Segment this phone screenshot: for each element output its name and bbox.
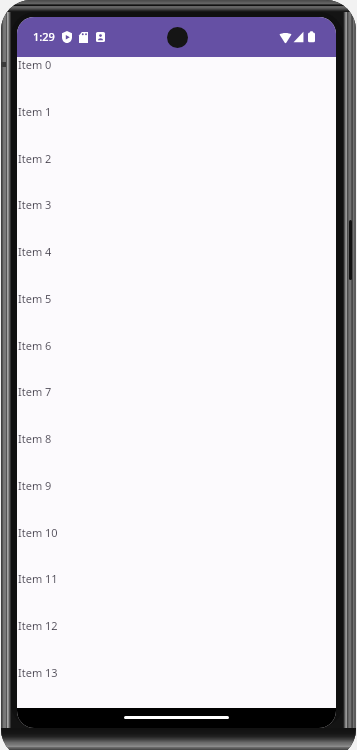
button[interactable]: Item 0 bbox=[17, 57, 336, 104]
button[interactable]: Item 10 bbox=[17, 525, 336, 572]
staticText: Item 4 bbox=[18, 244, 52, 259]
staticText: Item 1 bbox=[18, 104, 52, 119]
button[interactable]: Item 13 bbox=[17, 665, 336, 712]
staticText: 1:29 bbox=[33, 29, 55, 44]
staticText: Item 3 bbox=[18, 197, 52, 212]
staticText: Item 11 bbox=[18, 571, 58, 586]
staticText: Item 2 bbox=[18, 151, 52, 166]
staticText: Item 8 bbox=[18, 431, 52, 446]
staticText: Item 9 bbox=[18, 478, 52, 493]
button[interactable]: Item 5 bbox=[17, 291, 336, 338]
staticText: Item 12 bbox=[18, 618, 58, 633]
staticText: Item 13 bbox=[18, 665, 58, 680]
staticText: Item 7 bbox=[18, 384, 52, 399]
button[interactable]: Item 4 bbox=[17, 244, 336, 291]
button[interactable]: Item 8 bbox=[17, 431, 336, 478]
staticText: Item 0 bbox=[18, 57, 52, 72]
button[interactable]: Item 14 bbox=[17, 712, 336, 728]
button[interactable]: Item 3 bbox=[17, 197, 336, 244]
button[interactable]: Item 6 bbox=[17, 338, 336, 385]
staticText: Item 14 bbox=[18, 712, 58, 727]
button[interactable]: Item 7 bbox=[17, 384, 336, 431]
button[interactable]: Item 2 bbox=[17, 151, 336, 198]
staticText: Item 5 bbox=[18, 291, 52, 306]
staticText: Item 6 bbox=[18, 338, 52, 353]
button[interactable]: Item 9 bbox=[17, 478, 336, 525]
button[interactable]: Item 12 bbox=[17, 618, 336, 665]
button[interactable]: Item 1 bbox=[17, 104, 336, 151]
button[interactable]: Item 11 bbox=[17, 571, 336, 618]
staticText: Item 10 bbox=[18, 525, 58, 540]
